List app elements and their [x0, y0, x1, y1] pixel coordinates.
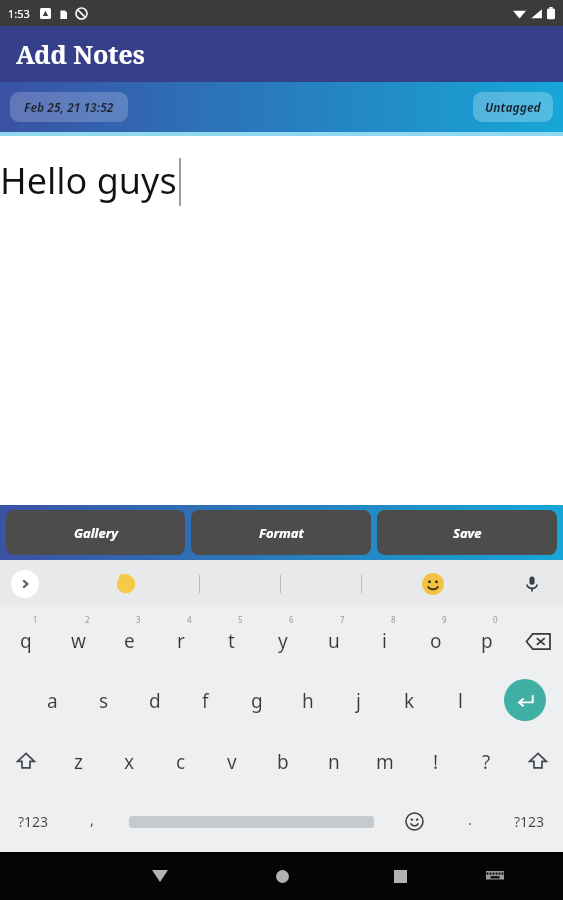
- staticText: c: [176, 749, 186, 775]
- button[interactable]: m: [359, 730, 410, 791]
- staticText: 7: [340, 614, 345, 625]
- staticText: .: [468, 809, 473, 829]
- staticText: v: [227, 749, 237, 775]
- staticText: 2: [85, 614, 90, 625]
- staticText: i: [382, 628, 387, 654]
- staticText: 3: [136, 614, 141, 625]
- staticText: ?123: [18, 812, 49, 831]
- button[interactable]: ?123: [496, 791, 563, 852]
- button[interactable]: Space: [118, 791, 384, 852]
- button[interactable]: Untagged: [473, 92, 553, 122]
- staticText: Add Notes: [16, 37, 145, 71]
- staticText: g: [251, 688, 263, 714]
- button[interactable]: s: [78, 669, 129, 730]
- staticText: ?123: [514, 812, 545, 831]
- button[interactable]: 1: [0, 607, 52, 669]
- button[interactable]: Recents: [380, 856, 420, 896]
- staticText: e: [124, 628, 135, 654]
- button[interactable]: Enter: [486, 669, 563, 730]
- button[interactable]: x: [104, 730, 155, 791]
- button[interactable]: Shift: [0, 730, 52, 791]
- staticText: 9: [442, 614, 447, 625]
- button[interactable]: 4: [155, 607, 206, 669]
- button[interactable]: Feb 25, 21 13:52: [10, 92, 128, 122]
- button[interactable]: Shift: [512, 730, 563, 791]
- button[interactable]: Hide keyboard: [140, 856, 180, 896]
- button[interactable]: 9: [410, 607, 461, 669]
- staticText: n: [328, 749, 340, 775]
- staticText: w: [71, 628, 86, 654]
- button[interactable]: Save: [377, 510, 557, 555]
- staticText: 4: [187, 614, 192, 625]
- button[interactable]: n: [308, 730, 359, 791]
- staticText: l: [458, 688, 463, 714]
- staticText: Feb 25, 21 13:52: [24, 99, 114, 115]
- staticText: 5: [238, 614, 243, 625]
- button[interactable]: Voice input: [519, 571, 545, 597]
- button[interactable]: !: [410, 730, 461, 791]
- button[interactable]: 2: [52, 607, 104, 669]
- staticText: Format: [259, 524, 304, 542]
- staticText: m: [376, 749, 394, 775]
- button[interactable]: Home: [262, 856, 302, 896]
- staticText: 1:53: [8, 6, 30, 21]
- button[interactable]: a: [27, 669, 78, 730]
- staticText: 1: [33, 614, 38, 625]
- staticText: 0: [493, 614, 498, 625]
- button[interactable]: k: [384, 669, 435, 730]
- staticText: o: [430, 628, 442, 654]
- button[interactable]: Backspace: [512, 607, 563, 669]
- staticText: k: [404, 688, 415, 714]
- button[interactable]: Waving hand emoji: [113, 571, 139, 597]
- button[interactable]: z: [52, 730, 104, 791]
- button[interactable]: c: [155, 730, 206, 791]
- staticText: j: [356, 688, 361, 714]
- staticText: Untagged: [485, 99, 541, 115]
- staticText: h: [302, 688, 314, 714]
- button[interactable]: 5: [206, 607, 257, 669]
- button[interactable]: 3: [104, 607, 155, 669]
- staticText: ?: [482, 749, 491, 775]
- staticText: p: [481, 628, 493, 654]
- staticText: f: [202, 688, 209, 714]
- button[interactable]: d: [129, 669, 180, 730]
- button[interactable]: g: [231, 669, 282, 730]
- button[interactable]: .: [445, 791, 496, 852]
- staticText: q: [20, 628, 32, 654]
- button[interactable]: b: [257, 730, 308, 791]
- button[interactable]: Gallery: [6, 510, 185, 555]
- button[interactable]: ?: [461, 730, 512, 791]
- staticText: 6: [289, 614, 294, 625]
- staticText: !: [433, 749, 439, 775]
- button[interactable]: ,: [67, 791, 118, 852]
- staticText: u: [328, 628, 340, 654]
- button[interactable]: 7: [308, 607, 359, 669]
- staticText: x: [124, 749, 135, 775]
- staticText: s: [99, 688, 109, 714]
- button[interactable]: Format: [191, 510, 371, 555]
- staticText: a: [47, 688, 58, 714]
- button[interactable]: l: [435, 669, 486, 730]
- staticText: t: [228, 628, 235, 654]
- staticText: ,: [90, 809, 95, 829]
- staticText: Gallery: [74, 524, 118, 542]
- staticText: z: [74, 749, 83, 775]
- staticText: d: [149, 688, 161, 714]
- button[interactable]: v: [206, 730, 257, 791]
- staticText: Save: [453, 524, 482, 542]
- button[interactable]: 0: [461, 607, 512, 669]
- button[interactable]: f: [180, 669, 231, 730]
- button[interactable]: h: [282, 669, 333, 730]
- button[interactable]: j: [333, 669, 384, 730]
- button[interactable]: ?123: [0, 791, 67, 852]
- button[interactable]: Smiley emoji: [420, 571, 446, 597]
- staticText: r: [177, 628, 185, 654]
- staticText: Hello guys: [0, 156, 177, 205]
- staticText: y: [278, 628, 288, 654]
- button[interactable]: 6: [257, 607, 308, 669]
- button[interactable]: Expand toolbar: [11, 570, 39, 598]
- button[interactable]: Emoji: [384, 791, 445, 852]
- button[interactable]: Switch keyboard: [475, 856, 515, 896]
- button[interactable]: 8: [359, 607, 410, 669]
- staticText: b: [277, 749, 289, 775]
